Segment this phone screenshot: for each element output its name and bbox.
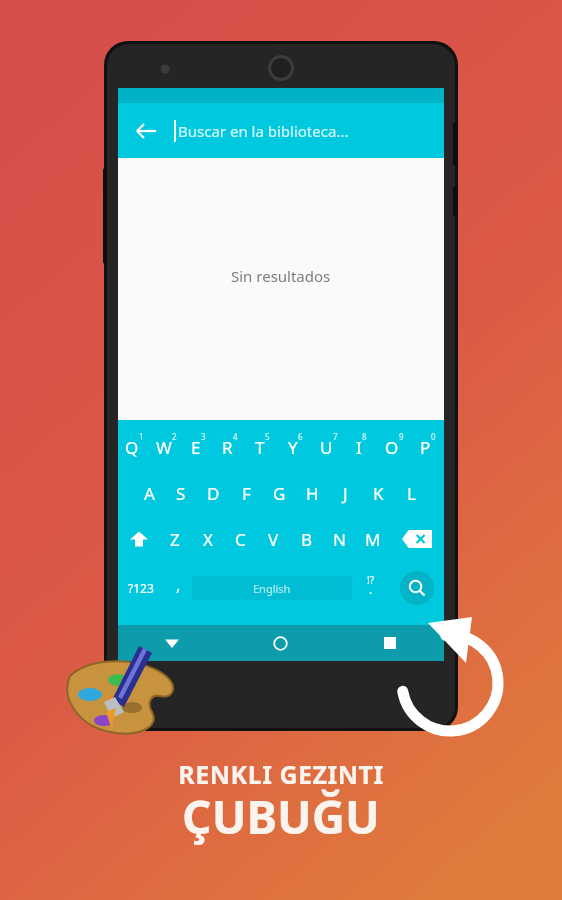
button[interactable]: S (165, 470, 197, 516)
staticText: F (242, 482, 251, 505)
staticText: T (255, 436, 265, 459)
staticText: J (343, 482, 348, 505)
button[interactable]: J (329, 470, 362, 516)
button[interactable]: Space (192, 576, 352, 600)
button[interactable]: Search (400, 571, 434, 605)
staticText: A (144, 482, 155, 505)
staticText: X (203, 528, 213, 551)
staticText: E (191, 436, 201, 459)
staticText: L (407, 482, 416, 505)
staticText: 0 (431, 431, 436, 442)
staticText: V (268, 528, 279, 551)
staticText: I (356, 436, 362, 459)
staticText: ÇUBUĞU (182, 785, 380, 848)
button[interactable]: ?123 (118, 562, 164, 614)
button[interactable]: F (230, 470, 263, 516)
button[interactable]: Z (159, 516, 191, 562)
button[interactable]: Shift (118, 516, 159, 562)
staticText: 9 (399, 431, 404, 442)
staticText: 4 (233, 431, 238, 442)
staticText: 6 (298, 431, 303, 442)
button[interactable]: V (257, 516, 290, 562)
staticText: P (420, 436, 431, 459)
staticText: G (273, 482, 286, 505)
button[interactable]: , (164, 562, 192, 614)
staticText: S (176, 482, 186, 505)
staticText: 8 (362, 431, 367, 442)
button[interactable]: P (411, 424, 444, 470)
button[interactable]: W (150, 424, 182, 470)
button[interactable]: H (296, 470, 329, 516)
button[interactable]: Q (118, 424, 150, 470)
button[interactable]: Back (118, 103, 174, 158)
staticText: 3 (201, 431, 206, 442)
button[interactable]: T (246, 424, 279, 470)
staticText: Z (170, 528, 180, 551)
staticText: K (373, 482, 384, 505)
button[interactable]: K (362, 470, 395, 516)
staticText: U (320, 436, 333, 459)
button[interactable]: G (263, 470, 296, 516)
staticText: English (253, 581, 291, 596)
button[interactable]: Home (226, 625, 335, 661)
button[interactable]: Back (118, 625, 226, 661)
button[interactable]: Y (279, 424, 312, 470)
button[interactable]: Back (118, 103, 444, 158)
staticText: N (333, 528, 346, 551)
staticText: Q (125, 436, 139, 459)
button[interactable]: C (224, 516, 257, 562)
staticText: B (301, 528, 313, 551)
staticText: 1 (139, 431, 144, 442)
button[interactable]: I (345, 424, 378, 470)
staticText: Sin resultados (231, 266, 331, 286)
staticText: . (369, 581, 373, 597)
staticText: 5 (265, 431, 270, 442)
button[interactable]: Delete (389, 516, 444, 562)
staticText: M (365, 528, 381, 551)
staticText: H (306, 482, 319, 505)
button[interactable]: R (214, 424, 246, 470)
button[interactable]: O (378, 424, 411, 470)
button[interactable]: M (356, 516, 389, 562)
staticText: !? (367, 573, 375, 587)
button[interactable]: B (290, 516, 323, 562)
staticText: ?123 (128, 580, 154, 596)
staticText: Buscar en la biblioteca... (178, 121, 349, 141)
button[interactable]: E (182, 424, 214, 470)
staticText: 7 (333, 431, 338, 442)
button[interactable]: Recents (335, 625, 444, 661)
staticText: R (222, 436, 233, 459)
staticText: RENKLI GEZINTI (178, 757, 384, 791)
staticText: D (207, 482, 220, 505)
staticText: , (176, 574, 181, 596)
button[interactable]: D (197, 470, 230, 516)
button[interactable]: A (133, 470, 165, 516)
staticText: Y (288, 436, 298, 459)
staticText: C (235, 528, 246, 551)
button[interactable]: !? (352, 562, 389, 614)
button[interactable]: X (191, 516, 224, 562)
staticText: W (156, 436, 172, 459)
staticText: O (385, 436, 399, 459)
button[interactable]: U (312, 424, 345, 470)
staticText: 2 (172, 431, 177, 442)
button[interactable]: L (395, 470, 428, 516)
button[interactable]: N (323, 516, 356, 562)
